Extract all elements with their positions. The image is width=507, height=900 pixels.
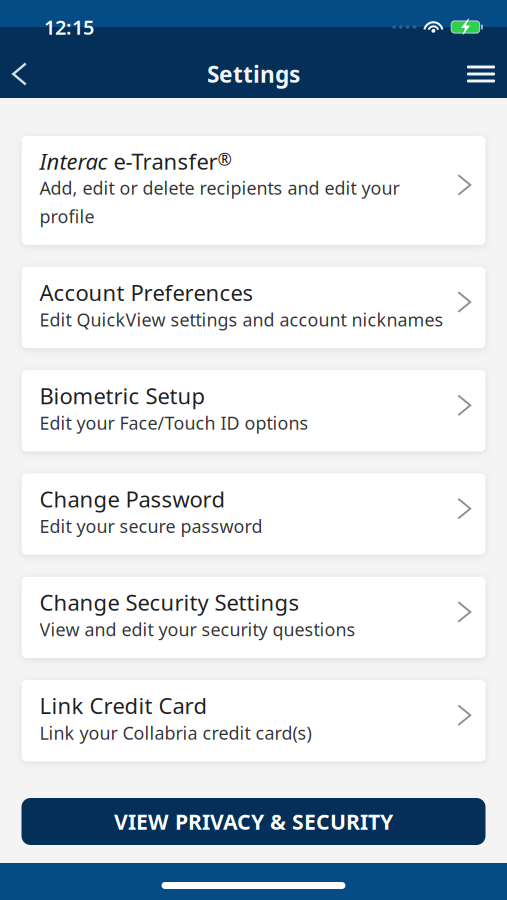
- staticText: Biometric Setup: [39, 381, 205, 411]
- staticText: Link Credit Card: [39, 691, 207, 721]
- button[interactable]: Biometric Setup: [21, 370, 485, 451]
- button[interactable]: Account Preferences: [21, 267, 485, 348]
- staticText: Add, edit or delete recipients and edit …: [39, 176, 399, 228]
- staticText: Account Preferences: [39, 277, 253, 307]
- button[interactable]: Change Security Settings: [21, 577, 485, 658]
- staticText: Change Password: [39, 484, 225, 514]
- staticText: Edit your Face/Touch ID options: [39, 411, 308, 435]
- staticText: Link your Collabria credit card(s): [39, 720, 311, 745]
- staticText: View and edit your security questions: [39, 617, 355, 641]
- button[interactable]: Back: [0, 50, 39, 98]
- staticText: VIEW PRIVACY & SECURITY: [114, 807, 393, 836]
- staticText: Interac e-Transfer®: [39, 146, 231, 176]
- staticText: Edit your secure password: [39, 514, 262, 538]
- staticText: Settings: [207, 59, 300, 89]
- staticText: Edit QuickView settings and account nick…: [39, 307, 443, 332]
- button[interactable]: Interac e-Transfer®: [21, 136, 485, 245]
- button[interactable]: Link Credit Card: [21, 680, 485, 761]
- button[interactable]: VIEW PRIVACY & SECURITY: [21, 798, 485, 845]
- button[interactable]: Change Password: [21, 473, 485, 555]
- button[interactable]: Menu: [458, 52, 504, 96]
- staticText: Change Security Settings: [39, 587, 299, 617]
- staticText: 12:15: [44, 13, 94, 41]
